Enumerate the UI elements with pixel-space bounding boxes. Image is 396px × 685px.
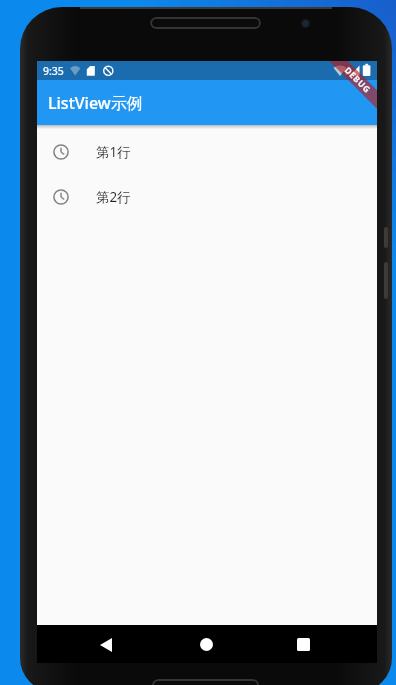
button[interactable]: 第1行 [37, 129, 377, 174]
button[interactable] [193, 631, 220, 658]
staticText: 第2行 [96, 188, 131, 206]
button[interactable]: 第2行 [37, 174, 377, 219]
button[interactable] [290, 631, 317, 658]
staticText: 9:35 [43, 64, 64, 78]
staticText: ListView示例 [48, 92, 143, 114]
button[interactable] [92, 631, 119, 658]
staticText: 第1行 [96, 143, 131, 161]
